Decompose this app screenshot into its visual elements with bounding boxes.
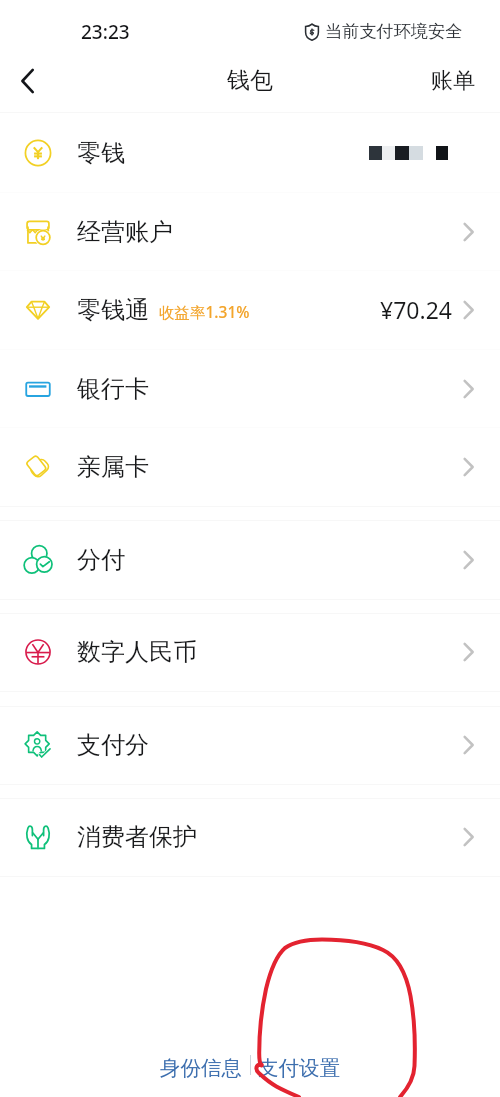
button[interactable]: 支付设置: [248, 1045, 350, 1091]
button[interactable]: 消费者保护: [0, 798, 500, 876]
staticText: ¥70.24: [380, 294, 452, 325]
staticText: 账单: [431, 67, 475, 95]
button[interactable]: 数字人民币: [0, 613, 500, 691]
staticText: 亲属卡: [77, 452, 149, 482]
staticText: 23:23: [81, 19, 130, 45]
staticText: 钱包: [227, 66, 273, 95]
staticText: 分付: [77, 545, 125, 575]
staticText: 经营账户: [77, 217, 173, 247]
button[interactable]: Back: [4, 58, 50, 104]
staticText: 零钱: [77, 138, 125, 168]
staticText: 身份信息: [160, 1055, 242, 1081]
staticText: 支付设置: [258, 1055, 340, 1081]
button[interactable]: 零钱: [0, 113, 500, 192]
staticText: 零钱通: [77, 295, 149, 325]
button[interactable]: 身份信息: [150, 1045, 252, 1091]
staticText: 消费者保护: [77, 822, 197, 852]
staticText: 数字人民币: [77, 637, 197, 667]
staticText: 当前支付环境安全: [325, 20, 463, 42]
button[interactable]: 亲属卡: [0, 427, 500, 506]
button[interactable]: 银行卡: [0, 349, 500, 428]
button[interactable]: 零钱通: [0, 270, 500, 349]
button[interactable]: 分付: [0, 521, 500, 599]
button[interactable]: 经营账户: [0, 192, 500, 271]
staticText: 支付分: [77, 730, 149, 760]
staticText: 收益率1.31%: [159, 301, 250, 322]
button[interactable]: 支付分: [0, 706, 500, 784]
staticText: 银行卡: [77, 374, 149, 404]
button[interactable]: 账单: [415, 55, 500, 107]
